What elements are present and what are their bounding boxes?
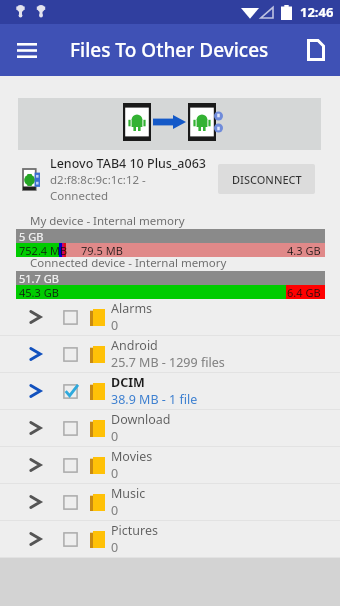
staticText: Lenovo TAB4 10 Plus_a063 <box>50 155 206 172</box>
button[interactable]: Open navigation menu <box>0 24 53 76</box>
staticText: 38.9 MB - 1 file <box>111 391 198 408</box>
staticText: Connected device - Internal memory <box>30 255 227 271</box>
staticText: Files To Other Devices <box>70 37 269 63</box>
staticText: 45.3 GB <box>19 285 59 299</box>
staticText: Android <box>111 337 158 354</box>
staticText: 12:46 <box>300 3 334 21</box>
button[interactable]: Movies <box>0 447 340 483</box>
staticText: 4.3 GB <box>287 243 321 257</box>
staticText: Download <box>111 411 171 428</box>
staticText: DCIM <box>111 374 145 391</box>
staticText: Pictures <box>111 522 158 539</box>
staticText: 0 <box>111 317 119 334</box>
button[interactable]: Android <box>0 336 340 372</box>
staticText: Movies <box>111 448 153 465</box>
button[interactable]: Pictures <box>0 521 340 557</box>
staticText: 5 GB <box>19 229 44 243</box>
staticText: DISCONNECT <box>232 172 302 187</box>
staticText: d2:f8:8c:9c:1c:12 - <box>50 172 146 188</box>
staticText: 0 <box>111 502 119 519</box>
button[interactable]: Music <box>0 484 340 520</box>
button[interactable]: DISCONNECT <box>218 164 315 194</box>
staticText: My device - Internal memory <box>30 213 185 229</box>
staticText: 51.7 GB <box>19 271 59 285</box>
button[interactable]: New file <box>292 24 340 76</box>
staticText: 0 <box>111 428 119 445</box>
staticText: Alarms <box>111 300 153 317</box>
button[interactable]: Alarms <box>0 299 340 335</box>
staticText: Connected <box>50 188 109 204</box>
button[interactable]: Download <box>0 410 340 446</box>
staticText: 6.4 GB <box>287 285 321 299</box>
staticText: Music <box>111 485 146 502</box>
staticText: 25.7 MB - 1299 files <box>111 354 225 371</box>
button[interactable]: Lenovo TAB4 10 Plus_a063 <box>22 154 315 204</box>
staticText: 0 <box>111 465 119 482</box>
staticText: 0 <box>111 539 119 556</box>
button[interactable]: DCIM <box>0 373 340 409</box>
staticText: 79.5 MB <box>81 243 123 257</box>
staticText: 752.4 MB <box>19 243 68 257</box>
